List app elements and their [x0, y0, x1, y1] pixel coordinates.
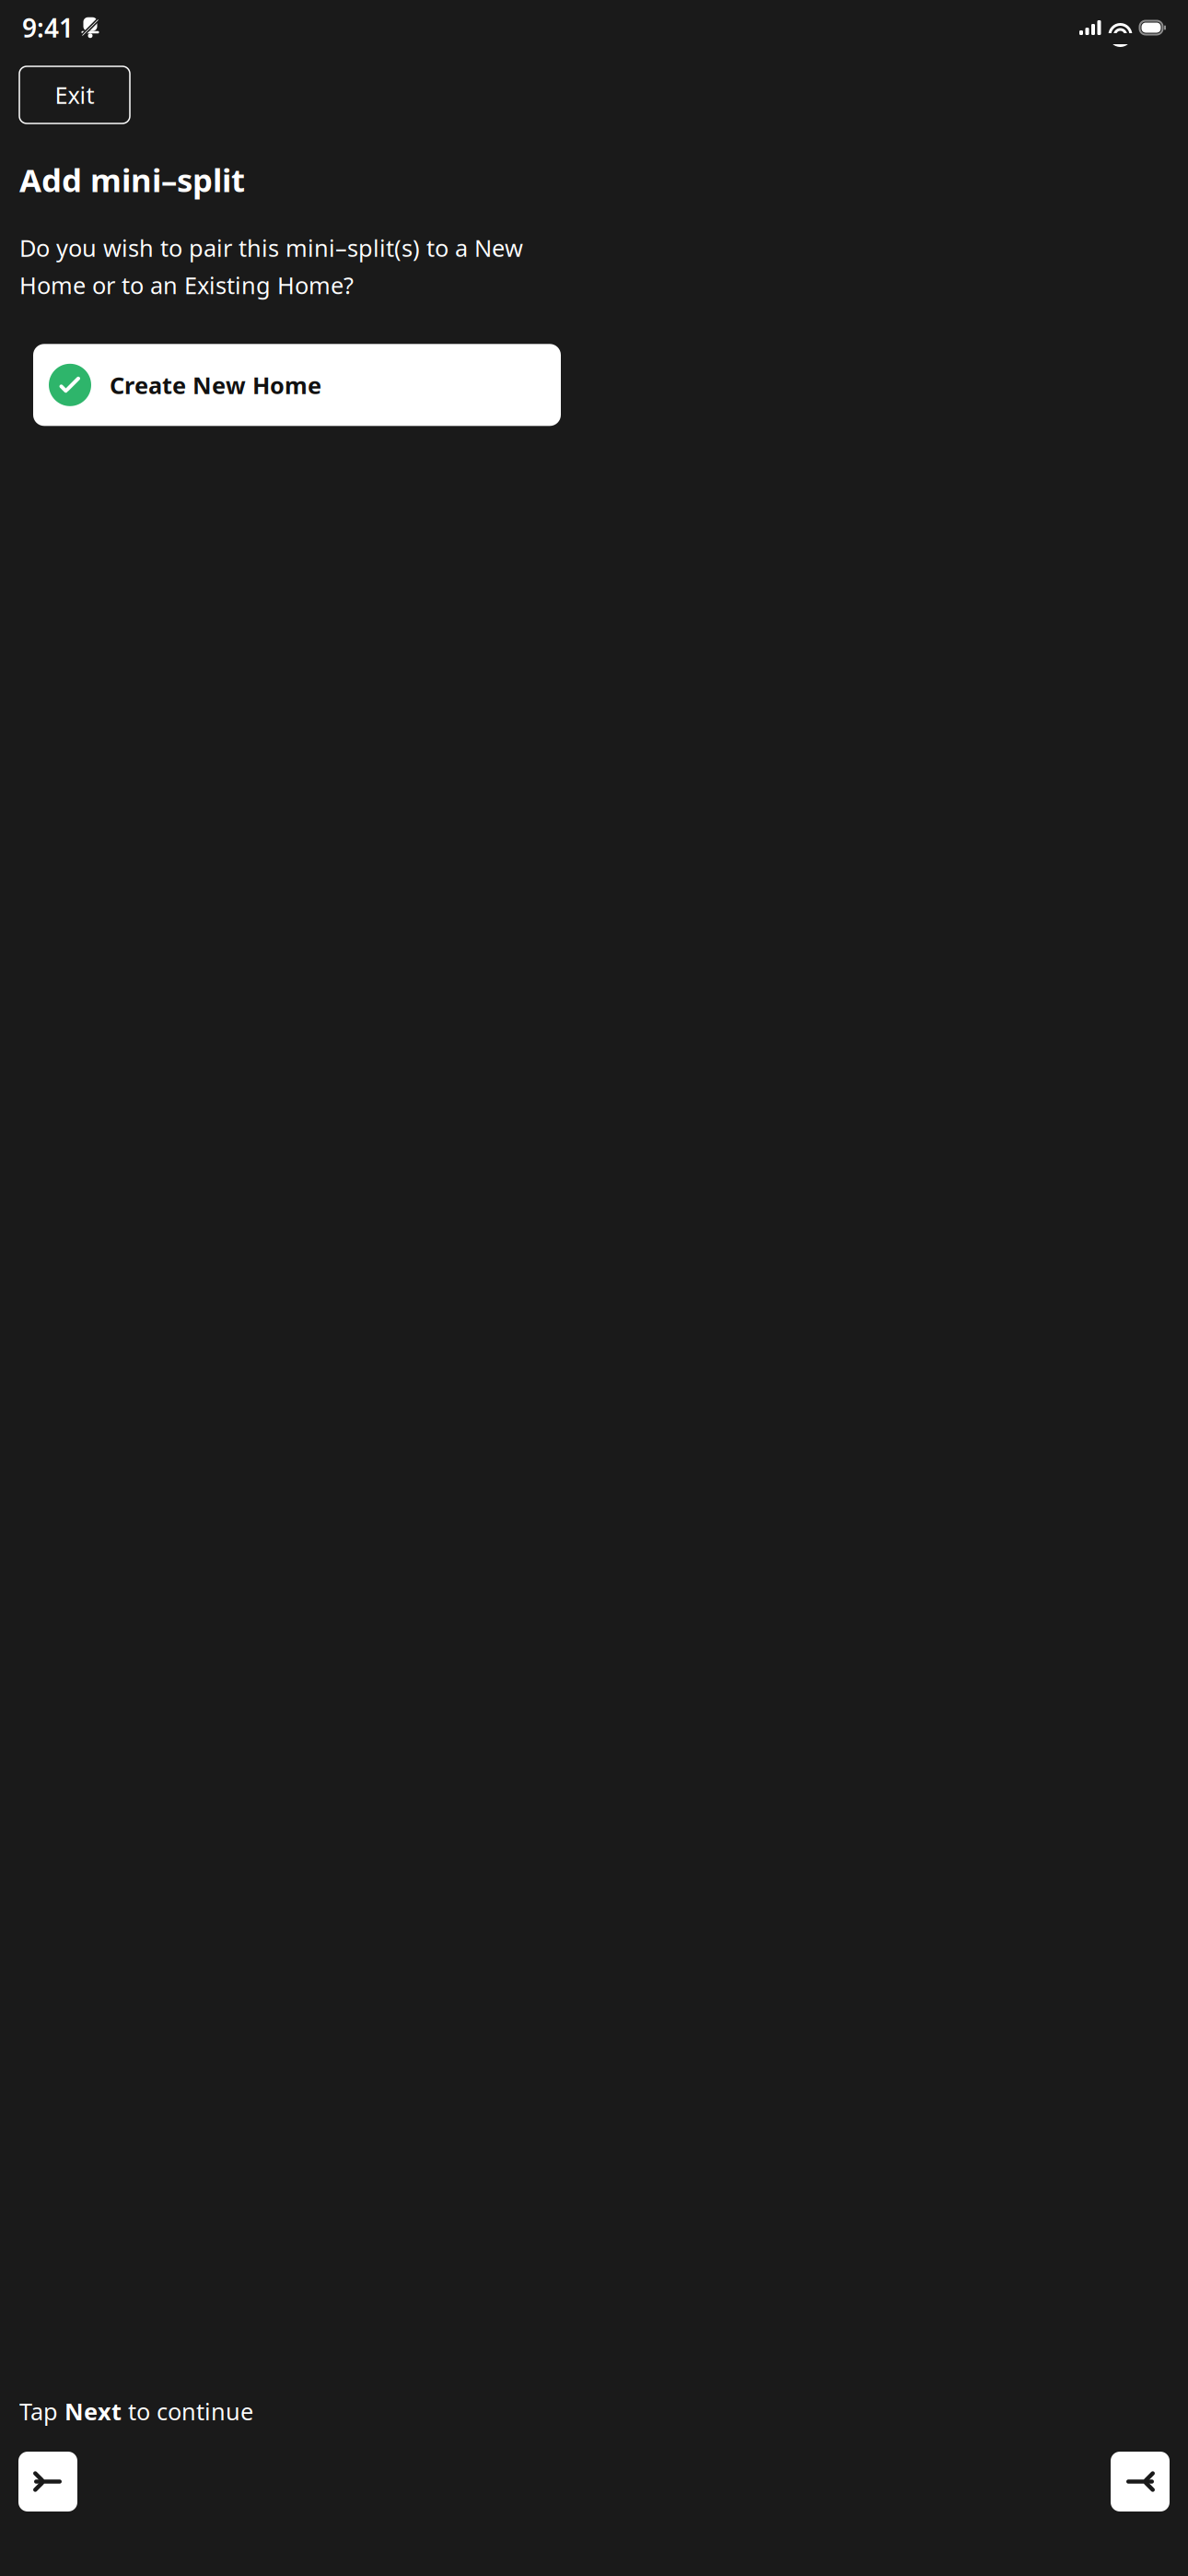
staticText: Tap	[19, 2396, 64, 2427]
staticText: to continue	[122, 2396, 253, 2427]
button[interactable]: Create New Home	[33, 344, 561, 426]
button[interactable]: Back	[18, 2452, 77, 2512]
staticText: Next	[64, 2396, 122, 2427]
staticText: Add mini–split	[19, 158, 245, 201]
button[interactable]: Exit	[19, 66, 130, 123]
staticText: Create New Home	[110, 369, 321, 400]
button[interactable]: Next	[1111, 2452, 1170, 2512]
staticText: 9:41	[22, 11, 74, 45]
staticText: Exit	[55, 79, 94, 110]
staticText: Do you wish to pair this mini–split(s) t…	[19, 232, 523, 301]
